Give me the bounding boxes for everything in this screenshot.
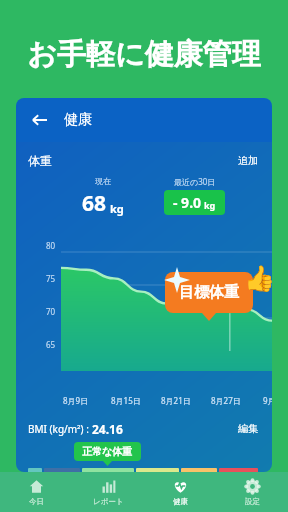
button[interactable]: 今日 <box>0 472 72 512</box>
staticText: 24.16 <box>92 421 123 437</box>
staticText: 70 <box>46 306 56 317</box>
staticText: 追加 <box>238 154 258 167</box>
staticText: kg <box>204 199 216 211</box>
staticText: 最近の30日 <box>174 176 216 187</box>
staticText: 9月3日 <box>263 395 272 406</box>
staticText: kg <box>110 201 124 216</box>
staticText: 8月27日 <box>211 395 241 406</box>
button[interactable]: 追加 <box>236 152 260 169</box>
staticText: BMI (kg/m²) : <box>28 422 92 436</box>
staticText: 80 <box>46 240 56 251</box>
staticText: 75 <box>46 273 56 284</box>
button[interactable]: 健康 <box>144 472 216 512</box>
staticText: 目標体重 <box>179 283 239 302</box>
staticText: 65 <box>46 339 56 350</box>
staticText: 健康 <box>173 497 188 506</box>
button[interactable]: 正常な体重 <box>74 442 141 461</box>
staticText: 正常な体重 <box>82 445 133 458</box>
button[interactable]: 目標体重 <box>165 272 253 313</box>
staticText: 8月9日 <box>63 395 89 406</box>
staticText: 健康 <box>64 111 92 129</box>
staticText: 👍 <box>244 264 272 293</box>
staticText: 編集 <box>238 422 258 435</box>
button[interactable]: Back <box>24 105 54 135</box>
staticText: レポート <box>93 497 124 506</box>
button[interactable]: レポート <box>72 472 144 512</box>
staticText: 体重 <box>28 153 52 168</box>
staticText: 8月21日 <box>161 395 191 406</box>
staticText: 68 <box>82 189 107 218</box>
staticText: - 9.0 <box>173 193 202 212</box>
staticText: 設定 <box>245 497 260 506</box>
button[interactable]: 編集 <box>236 420 260 437</box>
staticText: 現在 <box>95 176 111 186</box>
button[interactable]: - 9.0 <box>164 190 225 215</box>
staticText: 8月15日 <box>111 395 141 406</box>
button[interactable]: 設定 <box>216 472 288 512</box>
staticText: お手軽に健康管理 <box>27 36 261 73</box>
staticText: 今日 <box>29 497 44 506</box>
